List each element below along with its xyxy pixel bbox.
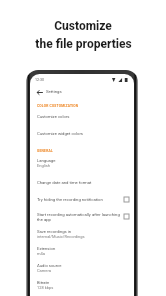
button[interactable]: Change date and time format <box>30 173 134 191</box>
staticText: Language <box>37 158 56 163</box>
button[interactable]: Save recordings in <box>30 225 134 242</box>
staticText: English <box>37 163 50 168</box>
button[interactable]: Toggle setting <box>124 214 129 219</box>
staticText: Customize widget colors <box>37 131 83 136</box>
staticText: Camera <box>37 268 51 273</box>
button[interactable]: Customize widget colors <box>30 125 134 142</box>
button[interactable]: Start recording automatically after laun… <box>30 208 134 225</box>
staticText: Extension <box>37 246 56 251</box>
staticText: Audio source <box>37 263 62 268</box>
button[interactable]: Customize colors <box>30 108 134 125</box>
staticText: Customize colors <box>37 114 70 119</box>
staticText: internal/Music/Recordings <box>37 234 85 239</box>
button[interactable]: Audio source <box>30 259 134 276</box>
staticText: Bitrate <box>37 280 50 285</box>
staticText: GENERAL <box>37 149 53 153</box>
staticText: m4a <box>37 251 45 256</box>
button[interactable]: Language <box>30 153 134 173</box>
staticText: Change date and time format <box>37 180 92 185</box>
staticText: Start recording automatically after laun… <box>37 212 123 222</box>
button[interactable]: Extension <box>30 242 134 259</box>
staticText: the file properties <box>35 37 132 51</box>
button[interactable]: Try hiding the recording notification <box>30 191 134 208</box>
staticText: Save recordings in <box>37 229 72 234</box>
button[interactable]: Toggle setting <box>124 197 129 202</box>
staticText: Try hiding the recording notification <box>37 197 103 202</box>
staticText: 12:30 <box>35 78 44 82</box>
staticText: 128 kbps <box>37 285 54 290</box>
staticText: Settings <box>46 89 62 94</box>
staticText: COLOR CUSTOMIZATION <box>37 104 79 108</box>
staticText: Customize <box>54 19 112 33</box>
button[interactable]: Back <box>36 88 44 96</box>
button[interactable]: Bitrate <box>30 276 134 293</box>
